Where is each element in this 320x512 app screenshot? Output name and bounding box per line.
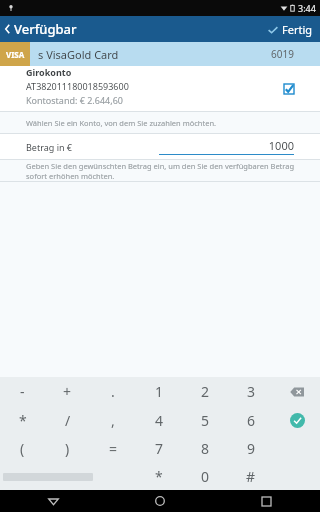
staticText: 0 — [201, 467, 210, 486]
button[interactable]: Fertig — [260, 18, 320, 41]
staticText: ) — [65, 439, 70, 458]
button[interactable]: ( — [0, 434, 45, 462]
staticText: * — [155, 467, 163, 486]
staticText: Geben Sie den gewünschten Betrag ein, um… — [26, 161, 306, 181]
staticText: 3 — [247, 382, 256, 401]
staticText: Girokonto — [26, 66, 72, 78]
staticText: 8 — [201, 439, 210, 458]
button[interactable]: 2 — [182, 377, 228, 406]
button[interactable]: . — [90, 377, 136, 406]
button[interactable]: 4 — [136, 406, 182, 434]
staticText: 5 — [201, 411, 210, 430]
button[interactable]: 1 — [136, 377, 182, 406]
button[interactable]: VISA — [0, 42, 320, 66]
button[interactable]: / — [45, 406, 90, 434]
staticText: + — [63, 382, 72, 401]
staticText: 4 — [155, 411, 164, 430]
button[interactable]: - — [0, 377, 45, 406]
staticText: = — [109, 439, 118, 458]
staticText: 6 — [247, 411, 256, 430]
staticText: 7 — [155, 439, 164, 458]
button[interactable]: 8 — [182, 434, 228, 462]
staticText: 1 — [155, 382, 164, 401]
button[interactable]: = — [90, 434, 136, 462]
button[interactable]: ) — [45, 434, 90, 462]
button[interactable]: * — [0, 406, 45, 434]
staticText: Betrag in € — [26, 141, 73, 153]
button[interactable]: + — [45, 377, 90, 406]
staticText: Kontostand: € 2.644,60 — [26, 94, 123, 106]
staticText: 1000 — [159, 138, 294, 153]
staticText: / — [65, 411, 71, 430]
staticText: VISA — [6, 49, 25, 60]
staticText: * — [19, 411, 27, 430]
staticText: 9 — [247, 439, 256, 458]
button[interactable]: Betrag in € — [0, 134, 320, 159]
button[interactable]: Zuletzt verwendet — [213, 490, 320, 512]
button[interactable]: 6 — [228, 406, 274, 434]
staticText: 3:44 — [298, 2, 316, 14]
staticText: Verfügbar — [14, 20, 77, 38]
button[interactable] — [90, 462, 136, 490]
button[interactable]: 7 — [136, 434, 182, 462]
button[interactable]: 5 — [182, 406, 228, 434]
staticText: AT382011180018593600 — [26, 80, 129, 92]
button[interactable]: Backspace — [290, 387, 304, 397]
button[interactable]: Zurück — [0, 490, 106, 512]
button[interactable]: * — [136, 462, 182, 490]
staticText: - — [20, 382, 25, 401]
button[interactable]: Bestätigen — [290, 413, 305, 428]
staticText: . — [111, 382, 115, 401]
staticText: ( — [20, 439, 25, 458]
button[interactable]: Startseite — [106, 490, 213, 512]
button[interactable]: 3 — [228, 377, 274, 406]
button[interactable]: 0 — [182, 462, 228, 490]
staticText: Wählen Sie ein Konto, von dem Sie zuzahl… — [26, 118, 217, 128]
staticText: 6019 — [271, 47, 294, 61]
staticText: 2 — [201, 382, 210, 401]
staticText: , — [111, 411, 115, 430]
button[interactable]: Girokonto — [0, 66, 320, 111]
button[interactable] — [45, 462, 90, 490]
button[interactable]: , — [90, 406, 136, 434]
staticText: Fertig — [282, 22, 313, 37]
button[interactable] — [0, 462, 45, 490]
button[interactable]: 9 — [228, 434, 274, 462]
button[interactable]: # — [228, 462, 274, 490]
staticText: s VisaGold Card — [38, 47, 119, 62]
button[interactable]: Verfügbar — [0, 16, 85, 42]
staticText: # — [246, 467, 256, 486]
